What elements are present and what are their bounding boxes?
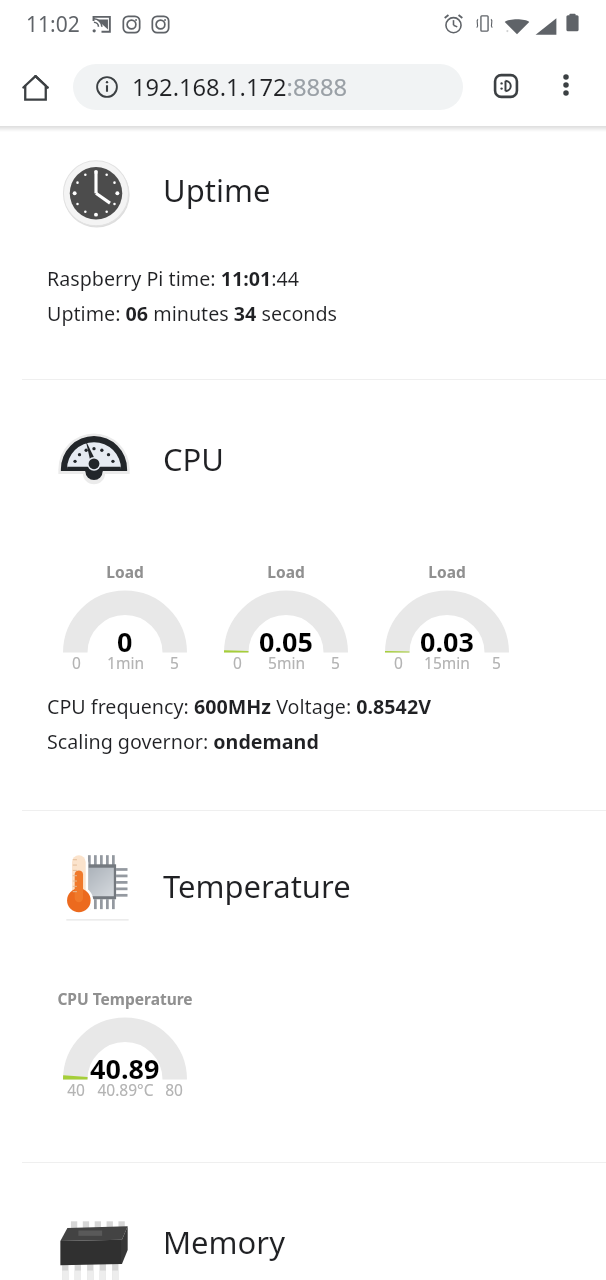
- staticText: CPU frequency: 600MHz Voltage: 0.8542V: [47, 693, 431, 720]
- staticText: 1min: [107, 652, 144, 673]
- staticText: 80: [165, 1079, 183, 1100]
- staticText: Raspberry Pi time: 11:01:44: [47, 265, 300, 292]
- staticText: CPU Temperature: [57, 988, 193, 1009]
- staticText: Temperature: [163, 865, 351, 907]
- staticText: 192.168.1.172:8888: [132, 71, 348, 103]
- staticText: 0: [233, 652, 242, 673]
- button[interactable]: 192.168.1.172:8888: [73, 64, 463, 110]
- button[interactable]: Switch tabs: [479, 59, 533, 113]
- staticText: 5: [331, 652, 340, 673]
- staticText: 11:02: [26, 10, 80, 39]
- staticText: 0: [394, 652, 403, 673]
- staticText: Memory: [163, 1221, 285, 1263]
- staticText: 5: [170, 652, 179, 673]
- staticText: Scaling governor: ondemand: [47, 728, 319, 755]
- staticText: 0: [117, 623, 133, 653]
- button[interactable]: Memory: [0, 1205, 606, 1280]
- staticText: 40.89: [90, 1050, 160, 1080]
- staticText: CPU: [163, 438, 225, 480]
- staticText: 0.05: [259, 623, 313, 653]
- button[interactable]: CPU: [0, 415, 606, 505]
- staticText: 0.03: [420, 623, 474, 653]
- button[interactable]: Home: [8, 60, 63, 115]
- staticText: 0: [72, 652, 81, 673]
- staticText: 40: [67, 1079, 85, 1100]
- button[interactable]: Temperature: [0, 845, 606, 935]
- button[interactable]: Uptime: [0, 150, 606, 240]
- staticText: Load: [106, 561, 144, 582]
- staticText: Load: [267, 561, 305, 582]
- button[interactable]: More options: [540, 59, 592, 111]
- staticText: 5: [492, 652, 501, 673]
- staticText: Uptime: 06 minutes 34 seconds: [47, 300, 338, 327]
- staticText: Load: [428, 561, 466, 582]
- staticText: 15min: [424, 652, 470, 673]
- staticText: 5min: [268, 652, 305, 673]
- staticText: 40.89°C: [97, 1079, 154, 1100]
- staticText: Uptime: [163, 169, 271, 211]
